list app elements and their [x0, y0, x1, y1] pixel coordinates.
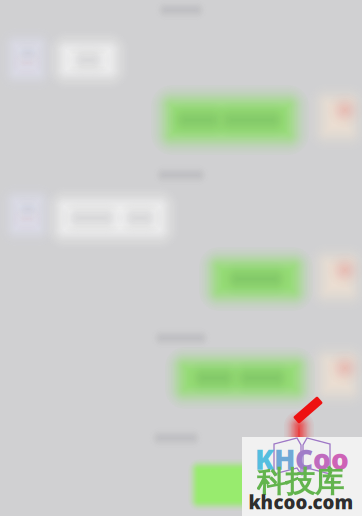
staticText: khcoo.com [248, 490, 353, 514]
staticText: 科技库 [256, 464, 343, 500]
button[interactable]: khcoo.com watermark [242, 437, 362, 516]
staticText: o [331, 440, 349, 478]
staticText: o [313, 440, 331, 478]
staticText: H [274, 440, 295, 478]
staticText: K [255, 440, 274, 478]
staticText: C [295, 440, 313, 478]
